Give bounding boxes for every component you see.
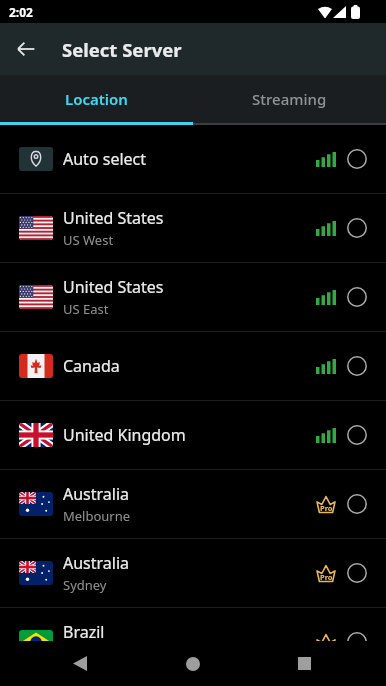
staticText: Australia	[63, 483, 130, 505]
button[interactable]: Australia	[0, 539, 386, 608]
staticText: United Kingdom	[63, 424, 186, 446]
staticText: Brazil	[63, 621, 105, 641]
button[interactable]: United Kingdom	[0, 401, 386, 470]
button[interactable]: Back	[0, 23, 52, 75]
button[interactable]: Australia	[0, 470, 386, 539]
staticText: Streaming	[252, 89, 327, 109]
button[interactable]: Canada	[0, 332, 386, 401]
button[interactable]: United States	[0, 194, 386, 263]
staticText: US West	[63, 231, 114, 249]
button[interactable]: Streaming	[193, 75, 386, 122]
button[interactable]: Home	[173, 641, 213, 686]
button[interactable]: Recent apps	[284, 641, 324, 686]
staticText: Melbourne	[63, 507, 131, 525]
staticText: United States	[63, 207, 164, 229]
staticText: Pro	[320, 503, 333, 513]
staticText: Location	[65, 89, 128, 109]
staticText: Select Server	[62, 37, 182, 62]
staticText: United States	[63, 276, 164, 298]
staticText: Auto select	[63, 148, 147, 170]
button[interactable]: Back	[60, 641, 100, 686]
staticText: Sydney	[63, 576, 107, 594]
staticText: 2:02	[9, 4, 33, 20]
staticText: Australia	[63, 552, 130, 574]
staticText: US East	[63, 300, 109, 318]
button[interactable]: Auto select	[0, 125, 386, 194]
staticText: Canada	[63, 355, 120, 377]
button[interactable]: United States	[0, 263, 386, 332]
staticText: Pro	[320, 572, 333, 582]
button[interactable]: Brazil	[0, 608, 386, 641]
button[interactable]: Location	[0, 75, 193, 122]
